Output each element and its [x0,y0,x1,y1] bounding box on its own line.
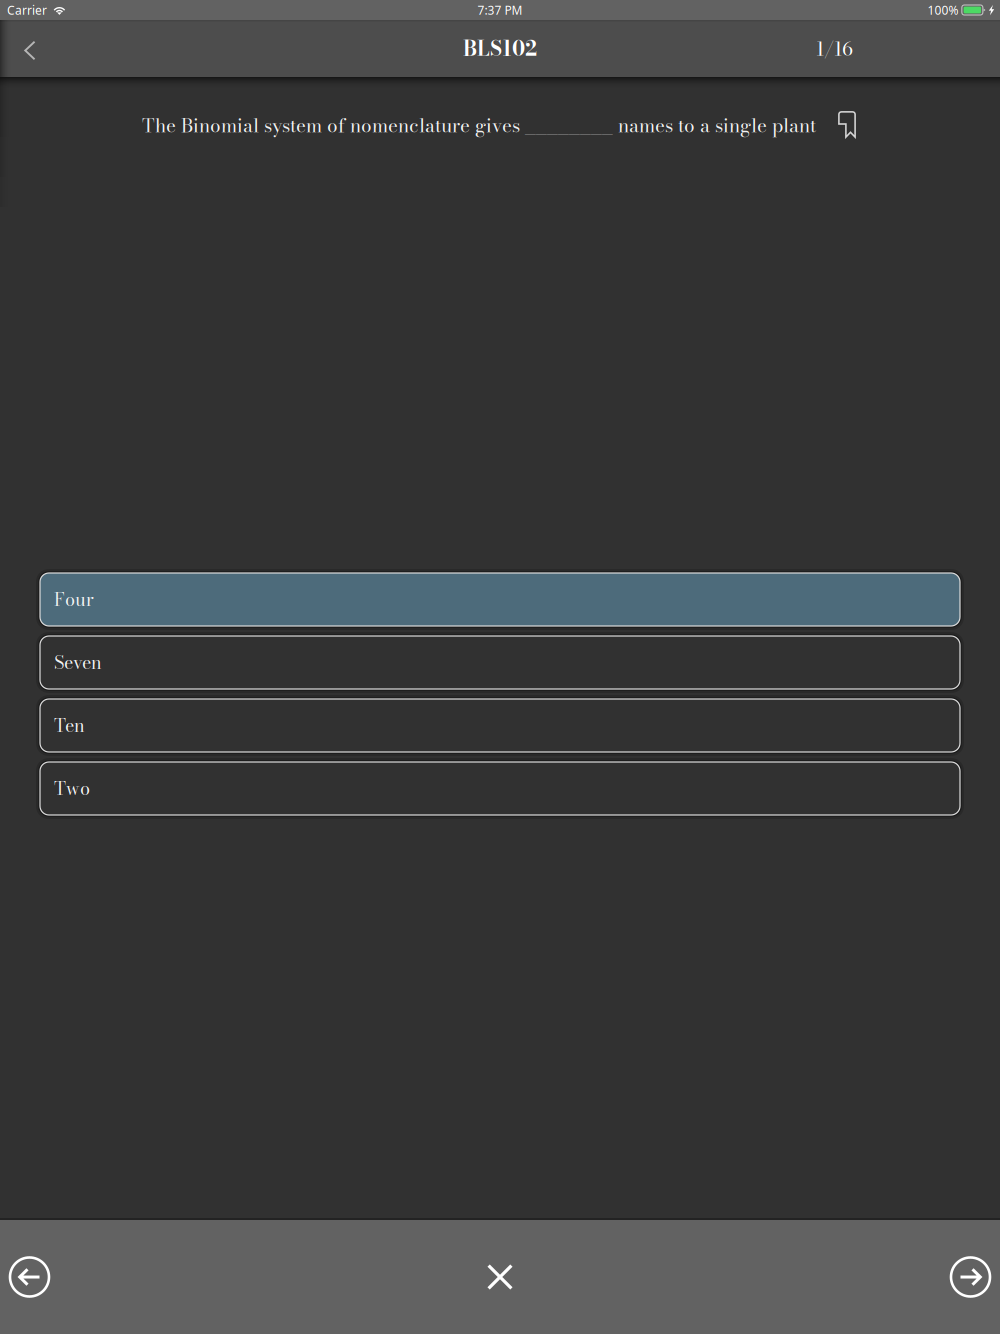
staticText: 7:37 PM [477,2,522,18]
staticText: Ten [54,712,85,739]
staticText: The Binomial system of nomenclature give… [142,111,816,140]
staticText: 1/16 [816,34,853,63]
staticText: Two [54,775,90,802]
button[interactable]: Ten [40,699,960,752]
button[interactable]: Close [471,1248,529,1306]
staticText: Carrier [7,2,47,18]
button[interactable]: Four [40,573,960,626]
button[interactable]: Seven [40,636,960,689]
button[interactable]: Back [9,22,51,74]
button[interactable]: Two [40,762,960,815]
staticText: Seven [54,649,102,676]
staticText: 100% [927,2,958,18]
staticText: BLS102 [463,33,537,64]
button[interactable]: Bookmark [829,106,865,143]
staticText: Four [54,586,94,613]
button[interactable]: Next question [941,1237,1000,1316]
button[interactable]: Previous question [0,1237,59,1316]
